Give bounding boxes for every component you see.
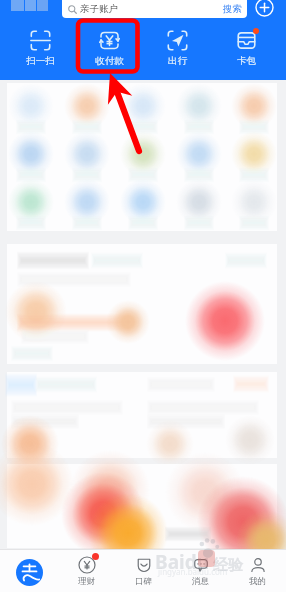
staticText: 收付款: [95, 55, 124, 67]
staticText: 出行: [168, 55, 187, 67]
staticText: 搜索: [223, 3, 242, 15]
button[interactable]: 理财: [58, 550, 115, 592]
button[interactable]: 口碑: [115, 550, 172, 592]
staticText: 扫一扫: [26, 55, 55, 67]
button[interactable]: 消息: [172, 550, 229, 592]
staticText: 口碑: [135, 576, 152, 587]
staticText: 经验: [213, 556, 243, 575]
staticText: 亲子账户: [80, 3, 118, 15]
button[interactable]: Add: [255, 0, 274, 17]
staticText: Baidu: [155, 549, 210, 575]
staticText: 理财: [78, 576, 95, 587]
staticText: 卡包: [237, 55, 256, 67]
button[interactable]: 卡包: [217, 29, 275, 67]
button[interactable]: 我的: [229, 550, 286, 592]
button[interactable]: 搜索: [223, 3, 242, 15]
staticText: 我的: [249, 576, 266, 587]
button[interactable]: 支付宝 首页: [0, 550, 58, 592]
button[interactable]: 扫一扫: [11, 29, 69, 67]
button[interactable]: 收付款: [80, 29, 138, 67]
staticText: 消息: [192, 576, 209, 587]
staticText: jingyan.baidu.com: [158, 566, 228, 577]
button[interactable]: 出行: [148, 29, 206, 67]
button[interactable]: 亲子账户: [62, 0, 247, 18]
